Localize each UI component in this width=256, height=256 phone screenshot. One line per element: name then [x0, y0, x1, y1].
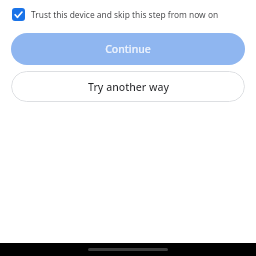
button[interactable]: Home [88, 248, 168, 251]
button[interactable]: Try another way [11, 71, 245, 102]
staticText: Trust this device and skip this step fro… [31, 9, 219, 20]
button[interactable]: Trust this device and skip this step fro… [12, 8, 246, 21]
staticText: Try another way [88, 80, 169, 94]
button[interactable]: Continue [11, 33, 245, 65]
staticText: Continue [105, 42, 151, 56]
